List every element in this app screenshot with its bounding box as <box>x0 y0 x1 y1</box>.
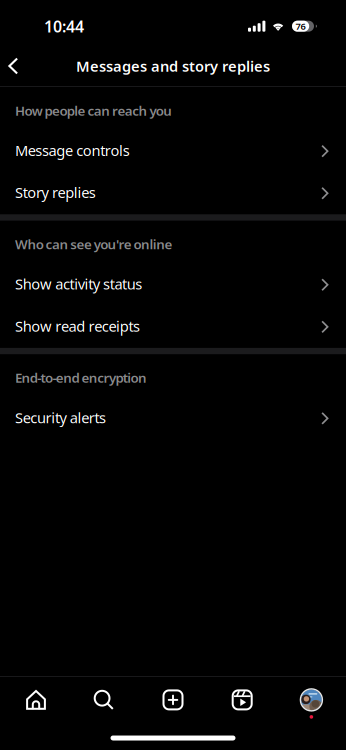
staticText: Show read receipts <box>15 316 140 336</box>
staticText: 76 <box>296 20 306 32</box>
button[interactable]: Back <box>0 45 26 87</box>
staticText: Security alerts <box>15 408 106 427</box>
button[interactable]: Show activity status <box>0 264 346 306</box>
staticText: Message controls <box>15 140 130 160</box>
staticText: How people can reach you <box>15 102 172 119</box>
button[interactable]: Show read receipts <box>0 306 346 348</box>
staticText: Messages and story replies <box>76 56 270 76</box>
button[interactable]: Message controls <box>0 130 346 172</box>
staticText: Story replies <box>15 183 96 202</box>
button[interactable]: Reels <box>208 677 277 723</box>
staticText: Who can see you're online <box>15 235 173 253</box>
button[interactable]: Create <box>138 677 208 723</box>
button[interactable]: Home <box>0 677 69 723</box>
staticText: 10:44 <box>44 16 84 37</box>
button[interactable]: Search <box>69 677 138 723</box>
staticText: End-to-end encryption <box>15 369 147 386</box>
button[interactable]: Profile <box>277 677 346 723</box>
button[interactable]: Security alerts <box>0 397 346 439</box>
button[interactable]: Story replies <box>0 172 346 214</box>
staticText: Show activity status <box>15 274 142 294</box>
